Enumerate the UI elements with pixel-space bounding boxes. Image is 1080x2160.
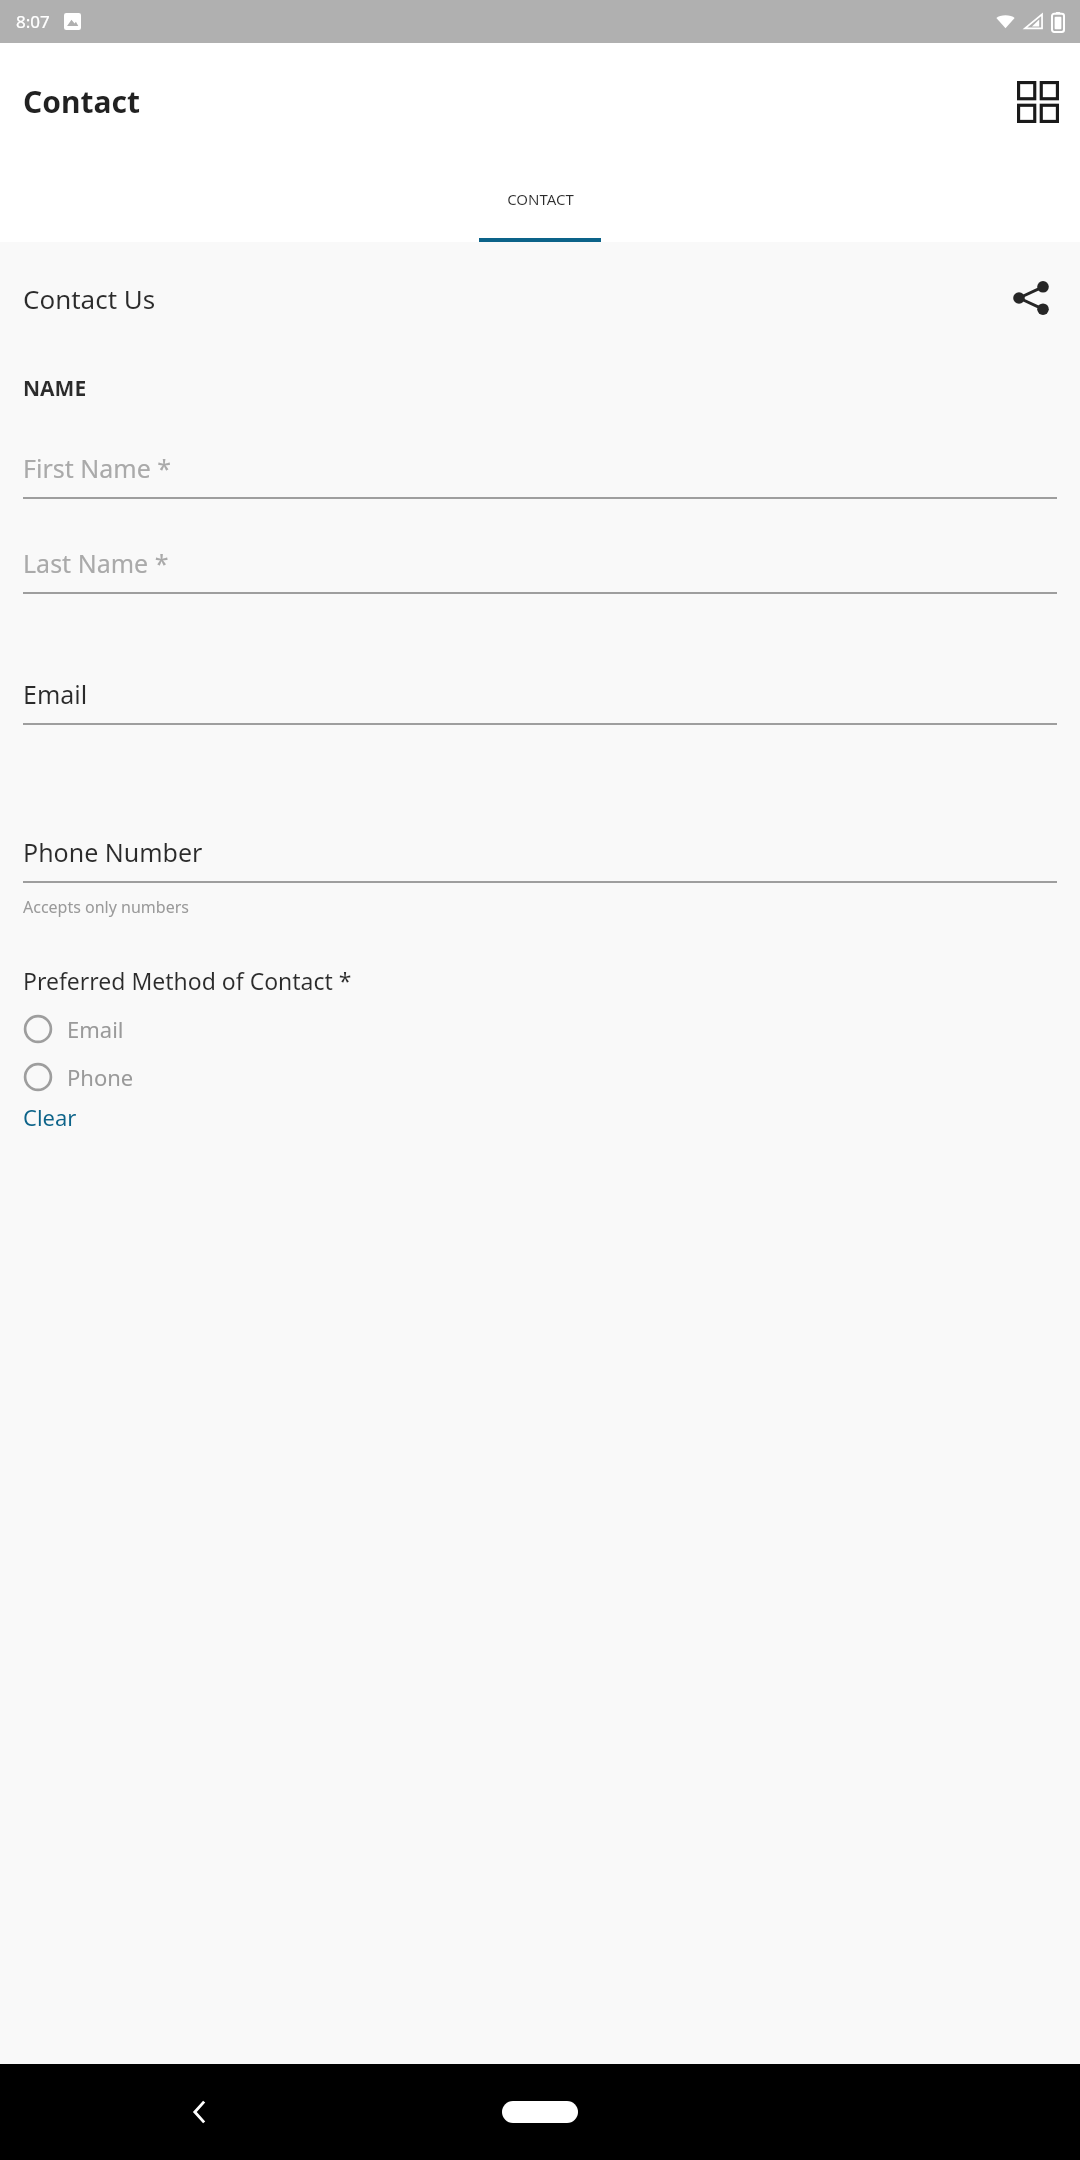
staticText: Accepts only numbers <box>23 896 189 918</box>
staticText: Contact <box>23 81 140 122</box>
staticText: Last Name * <box>23 546 169 580</box>
staticText: Contact Us <box>23 281 156 316</box>
staticText: Clear <box>23 1102 77 1132</box>
staticText: Email <box>23 677 88 711</box>
button[interactable]: Clear <box>23 1100 77 1134</box>
button[interactable]: Phone <box>23 1058 1057 1096</box>
button[interactable]: Last Name * <box>23 546 1057 594</box>
staticText: Phone <box>67 1062 134 1092</box>
button[interactable]: First Name * <box>23 451 1057 499</box>
button[interactable]: CONTACT <box>479 160 601 242</box>
staticText: Preferred Method of Contact * <box>23 965 352 996</box>
staticText: Phone Number <box>23 835 203 869</box>
button[interactable]: Email <box>23 677 1057 725</box>
button[interactable]: Back <box>170 2082 230 2142</box>
staticText: 8:07 <box>16 10 50 33</box>
staticText: First Name * <box>23 451 172 485</box>
button[interactable]: Phone Number <box>23 835 1057 883</box>
button[interactable]: Grid view <box>1010 74 1066 130</box>
button[interactable]: Email <box>23 1010 1057 1048</box>
staticText: NAME <box>23 374 87 403</box>
staticText: CONTACT <box>507 189 574 209</box>
button[interactable]: Home <box>502 2101 578 2123</box>
button[interactable]: Share <box>1005 272 1057 324</box>
staticText: Email <box>67 1014 124 1044</box>
